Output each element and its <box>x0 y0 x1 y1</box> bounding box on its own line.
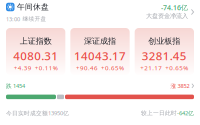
staticText: 上证指数 <box>20 36 52 46</box>
staticText: 13:00 <box>6 15 20 23</box>
staticText: 3281.45 <box>142 48 187 64</box>
staticText: 4080.31 <box>13 48 58 64</box>
staticText: 继续开盘 <box>22 15 46 23</box>
staticText: -642亿 <box>177 109 194 117</box>
staticText: 午间休盘 <box>17 2 49 12</box>
button[interactable]: 深证成指 <box>70 28 130 75</box>
staticText: +90.46 <box>76 64 98 72</box>
button[interactable]: 上证指数 <box>6 28 65 75</box>
button[interactable]: 跌 1454 <box>0 75 200 99</box>
staticText: 跌 1454 <box>6 82 25 90</box>
staticText: +0.65% <box>165 64 188 72</box>
staticText: 大盘资金净流入 <box>146 12 188 20</box>
staticText: 创业板指 <box>148 36 180 46</box>
staticText: -74.16亿 <box>161 3 188 12</box>
button[interactable]: 创业板指 <box>135 28 194 75</box>
staticText: +0.65% <box>101 64 124 72</box>
button[interactable]: 午间休盘 <box>0 0 200 23</box>
staticText: 14043.17 <box>74 48 126 64</box>
staticText: 较上一日此时 <box>141 109 177 117</box>
staticText: +21.17 <box>140 64 162 72</box>
staticText: 今日实时成交额13950亿 <box>6 109 69 117</box>
staticText: +0.11% <box>35 64 58 72</box>
staticText: +4.39 <box>14 64 32 72</box>
staticText: 涨 3852 <box>170 82 189 90</box>
staticText: 深证成指 <box>84 36 116 46</box>
